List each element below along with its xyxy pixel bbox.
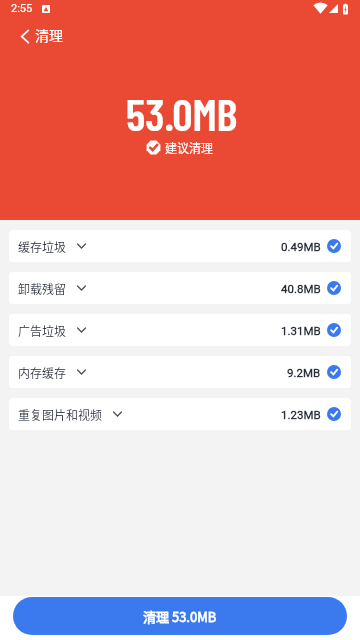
staticText: 广告垃圾	[18, 322, 67, 339]
button[interactable]: Back	[13, 24, 37, 48]
staticText: 1.23MB	[281, 408, 321, 421]
button[interactable]: 重复图片和视频	[9, 398, 351, 430]
button[interactable]: 清理 53.0MB	[13, 597, 347, 635]
button[interactable]: 内存缓存	[9, 356, 351, 388]
staticText: 40.8MB	[281, 282, 321, 295]
staticText: 清理 53.0MB	[143, 607, 217, 626]
staticText: 1.31MB	[281, 324, 321, 337]
staticText: 53.0MB	[126, 86, 238, 140]
staticText: 0.49MB	[281, 240, 321, 253]
staticText: 卸载残留	[18, 280, 67, 297]
staticText: 建议清理	[165, 139, 214, 156]
button[interactable]: 卸载残留	[9, 272, 351, 304]
staticText: 9.2MB	[287, 366, 321, 379]
staticText: 缓存垃圾	[18, 238, 67, 255]
staticText: 重复图片和视频	[18, 406, 103, 423]
staticText: 内存缓存	[18, 364, 67, 381]
button[interactable]: 缓存垃圾	[9, 230, 351, 262]
button[interactable]: 广告垃圾	[9, 314, 351, 346]
staticText: 2:55	[11, 2, 33, 15]
staticText: 清理	[35, 25, 63, 45]
